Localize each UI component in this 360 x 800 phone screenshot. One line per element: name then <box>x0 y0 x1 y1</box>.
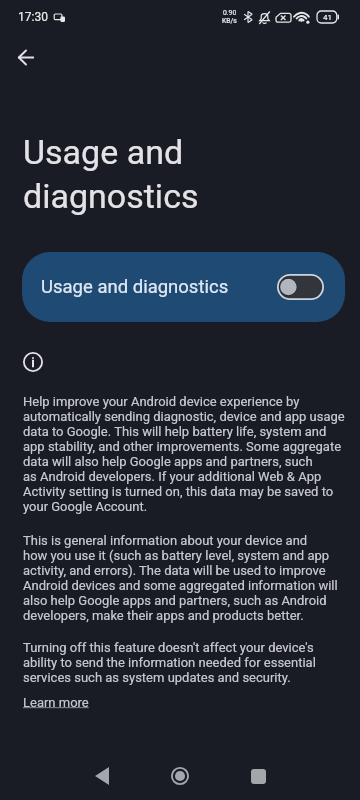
button[interactable]: Usage and diagnostics toggle <box>277 274 324 300</box>
button[interactable]: Back <box>2 33 50 81</box>
staticText: Usage and diagnostics <box>41 276 277 298</box>
button[interactable]: Information <box>21 350 45 374</box>
button[interactable]: Recent apps <box>230 752 286 800</box>
staticText: KB/s <box>222 17 237 25</box>
button[interactable]: Home <box>152 752 208 800</box>
staticText: 17:30 <box>18 10 48 24</box>
button[interactable]: Learn more <box>23 695 89 710</box>
button[interactable]: Usage and diagnostics <box>22 252 345 322</box>
staticText: This is general information about your d… <box>23 533 338 623</box>
staticText: 0.90 <box>223 9 237 17</box>
button[interactable]: Back <box>74 752 130 800</box>
staticText: Usage and diagnostics <box>23 132 199 216</box>
staticText: 41 <box>323 13 332 22</box>
staticText: Learn more <box>23 695 89 710</box>
staticText: Turning off this feature doesn't affect … <box>23 640 316 685</box>
staticText: Help improve your Android device experie… <box>23 394 345 514</box>
